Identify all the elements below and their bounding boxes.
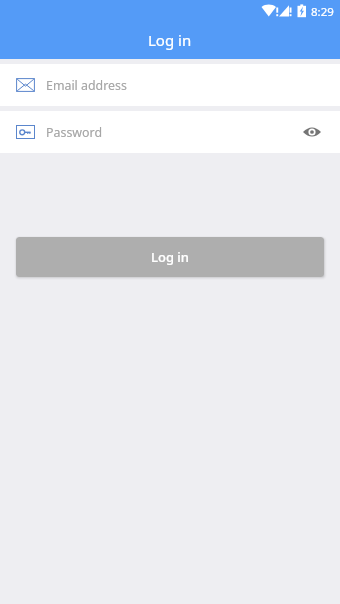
button[interactable]: Email address — [0, 64, 340, 106]
button[interactable]: Show password — [291, 111, 333, 153]
staticText: Log in — [151, 248, 189, 266]
staticText: 8:29 — [311, 4, 334, 20]
staticText: Password — [46, 124, 103, 141]
staticText: Log in — [148, 30, 192, 50]
staticText: Email address — [46, 77, 127, 94]
button[interactable]: Password — [0, 111, 340, 153]
button[interactable]: Log in — [16, 237, 324, 277]
